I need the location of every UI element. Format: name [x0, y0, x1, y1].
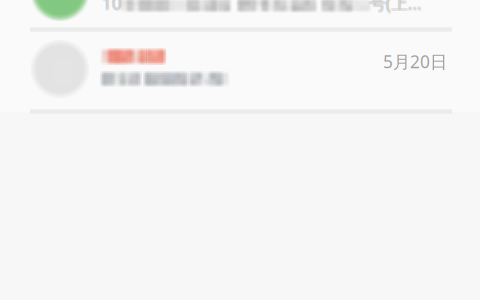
staticText: 10: [102, 0, 122, 15]
staticText: 10: [101, 0, 121, 15]
staticText: 号(上…: [368, 0, 421, 15]
staticText: 10: [101, 0, 121, 13]
staticText: 10: [102, 0, 122, 13]
staticText: 10: [102, 0, 122, 14]
staticText: 5月20日: [383, 50, 447, 73]
staticText: 10: [103, 0, 123, 15]
staticText: 10: [103, 0, 123, 13]
staticText: 号(上…: [368, 0, 421, 13]
staticText: 号(上…: [369, 0, 422, 14]
button[interactable]: 10: [0, 0, 480, 29]
staticText: 号(上…: [368, 0, 421, 14]
staticText: 号(上…: [369, 0, 422, 13]
staticText: 10: [101, 0, 121, 14]
staticText: 号(上…: [370, 0, 423, 14]
staticText: 号(上…: [370, 0, 423, 15]
staticText: 10: [103, 0, 123, 14]
button[interactable]: 5月20日: [0, 30, 480, 112]
staticText: 号(上…: [370, 0, 423, 13]
staticText: 号(上…: [369, 0, 422, 15]
